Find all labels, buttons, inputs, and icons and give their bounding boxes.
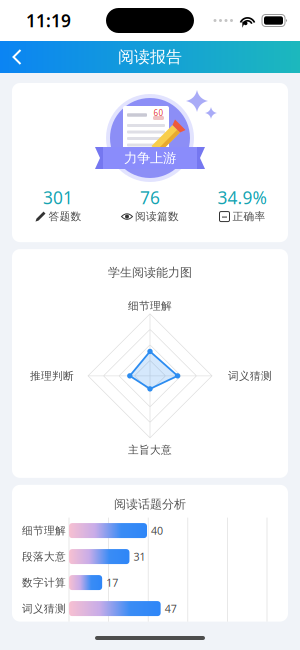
staticText: 正确率 xyxy=(232,210,265,223)
staticText: 推理判断 xyxy=(30,369,74,382)
staticText: 301 xyxy=(43,186,73,209)
staticText: 答题数 xyxy=(48,210,81,223)
button[interactable]: Back xyxy=(0,38,32,76)
staticText: 76 xyxy=(140,186,160,209)
staticText: 47 xyxy=(165,601,177,616)
staticText: 数字计算 xyxy=(22,576,66,589)
staticText: 31 xyxy=(133,549,145,564)
staticText: 40 xyxy=(151,523,163,538)
staticText: 17 xyxy=(106,575,118,590)
staticText: 学生阅读能力图 xyxy=(108,265,192,280)
staticText: 60 xyxy=(153,108,163,118)
staticText: 阅读篇数 xyxy=(135,210,179,223)
staticText: 主旨大意 xyxy=(128,443,172,456)
staticText: 34.9% xyxy=(217,186,266,209)
staticText: 段落大意 xyxy=(22,550,66,563)
staticText: 词义猜测 xyxy=(228,369,272,382)
staticText: 11:19 xyxy=(26,9,71,32)
staticText: 阅读报告 xyxy=(118,47,182,67)
staticText: 词义猜测 xyxy=(22,602,66,615)
staticText: 阅读话题分析 xyxy=(114,497,186,512)
staticText: 细节理解 xyxy=(128,299,172,312)
staticText: 力争上游 xyxy=(124,150,176,166)
staticText: 细节理解 xyxy=(22,524,66,537)
